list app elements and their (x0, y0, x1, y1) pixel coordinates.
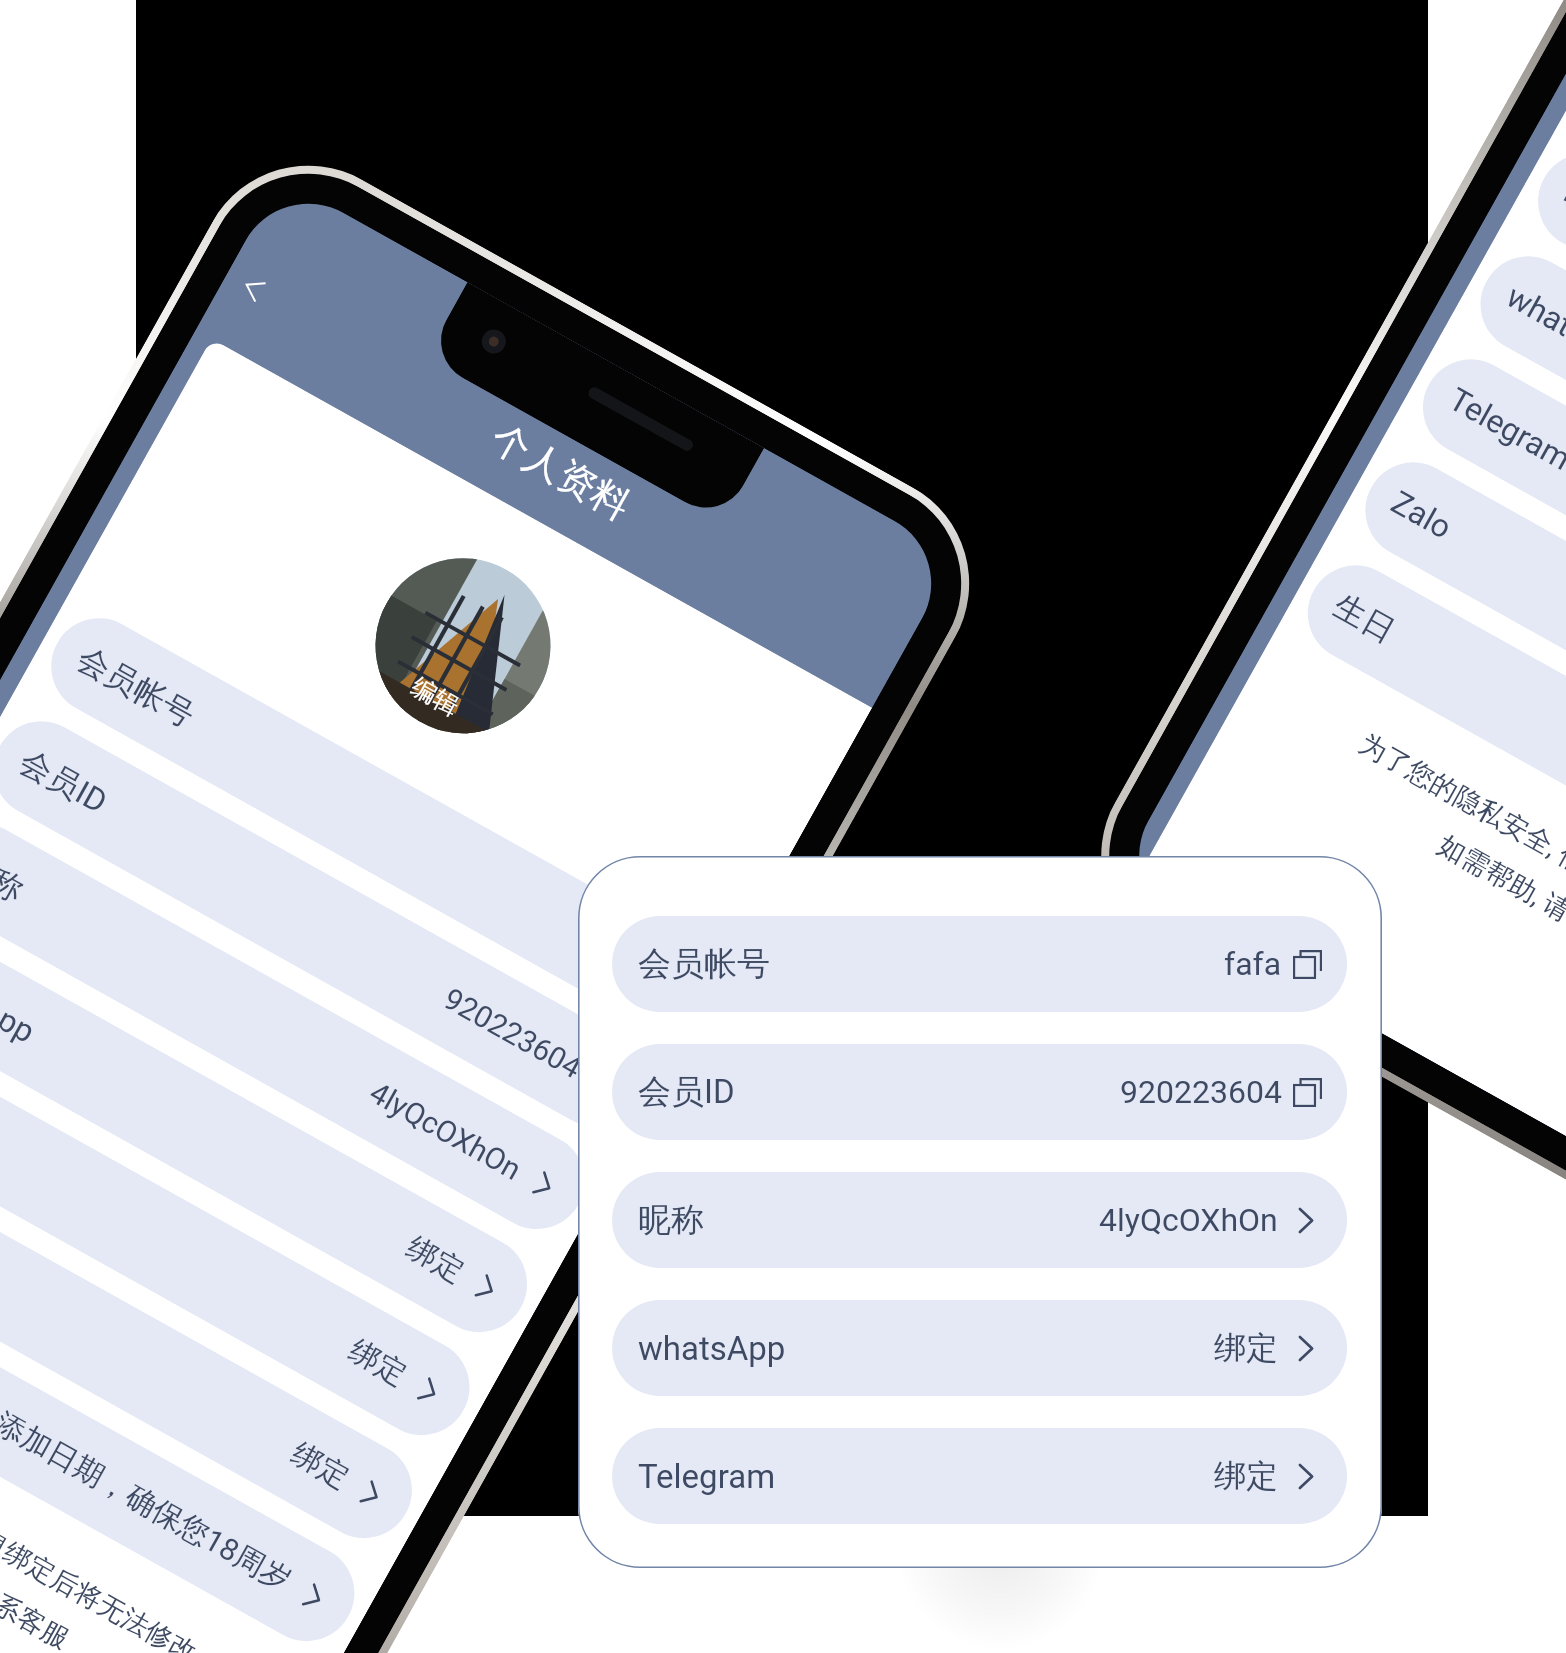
other: Open (464, 1266, 508, 1310)
other: Open (1289, 1204, 1322, 1237)
staticText: whatsApp (1500, 277, 1566, 380)
staticText: 4lyQcOXhOn (364, 1075, 527, 1187)
staticText: Telegram (1442, 380, 1566, 478)
button[interactable]: 会员帐号 (612, 916, 1347, 1012)
staticText: Telegram (638, 1457, 776, 1496)
button[interactable]: 昵称 (612, 1172, 1347, 1268)
staticText: 绑定 (285, 1434, 356, 1497)
staticText: 会员帐号 (70, 638, 201, 735)
button[interactable]: 生日 (1290, 548, 1566, 987)
staticText: 920223604 (1120, 1073, 1282, 1111)
button[interactable]: Back (218, 253, 289, 324)
staticText: 绑定 (400, 1228, 471, 1291)
button[interactable]: 昵称 (0, 807, 602, 1246)
button[interactable]: whatsApp (612, 1300, 1347, 1396)
button[interactable]: Zalo (1348, 445, 1566, 884)
staticText: 昵称 (0, 844, 31, 910)
other: Open (349, 1472, 393, 1516)
other: Open (407, 1369, 450, 1413)
staticText: 昵称 (638, 1199, 704, 1241)
staticText: 生日 (1327, 585, 1402, 651)
staticText: 个人资料 (483, 414, 639, 530)
staticText: 绑定 (1214, 1456, 1278, 1496)
other: Open (1289, 1460, 1322, 1493)
staticText: 编辑 (406, 671, 465, 722)
button[interactable]: 会员ID (612, 1044, 1347, 1140)
button[interactable]: 生日 (0, 1219, 372, 1653)
staticText: 绑定 (1214, 1328, 1278, 1368)
staticText: 会员ID (638, 1071, 735, 1113)
other: Copy (582, 1063, 622, 1103)
staticText: 为了您的隐私安全, 信息绑定后将无法修改 如需帮助, 请 联系客服 (1228, 670, 1566, 1099)
button[interactable]: Zalo (0, 1116, 429, 1555)
staticText: 绑定 (342, 1331, 413, 1394)
staticText: 4lyQcOXhOn (1099, 1201, 1278, 1239)
staticText: fafa (1224, 945, 1282, 983)
other: Open (522, 1163, 565, 1207)
other: Copy (1293, 1078, 1322, 1107)
button[interactable]: Telegram (0, 1013, 487, 1452)
button[interactable]: 昵称 (1521, 136, 1566, 575)
other: Open (292, 1575, 335, 1619)
staticText: 会员ID (13, 741, 114, 822)
other: Copy (1293, 950, 1322, 979)
other: Open (1289, 1332, 1322, 1365)
staticText: 会员帐号 (638, 943, 770, 985)
staticText: 为了您的隐私安全, 信息绑定后将无法修改 如需帮助, 请 联系客服 (0, 1341, 303, 1653)
button[interactable]: 会员帐号 (34, 601, 717, 1040)
staticText: 昵称 (1557, 173, 1566, 239)
staticText: 添加日期，确保您18周岁 (0, 1404, 298, 1600)
button[interactable]: 会员ID (0, 704, 659, 1143)
button[interactable]: whatsApp (1463, 239, 1566, 678)
button[interactable]: Telegram (1406, 342, 1566, 781)
button[interactable]: whatsApp (0, 910, 544, 1349)
button[interactable]: Telegram (612, 1428, 1347, 1524)
staticText: 920223604 (438, 981, 588, 1085)
staticText: whatsApp (638, 1329, 786, 1368)
staticText: whatsApp (0, 948, 41, 1051)
staticText: Zalo (1385, 483, 1458, 547)
other: Copy (640, 960, 680, 1000)
